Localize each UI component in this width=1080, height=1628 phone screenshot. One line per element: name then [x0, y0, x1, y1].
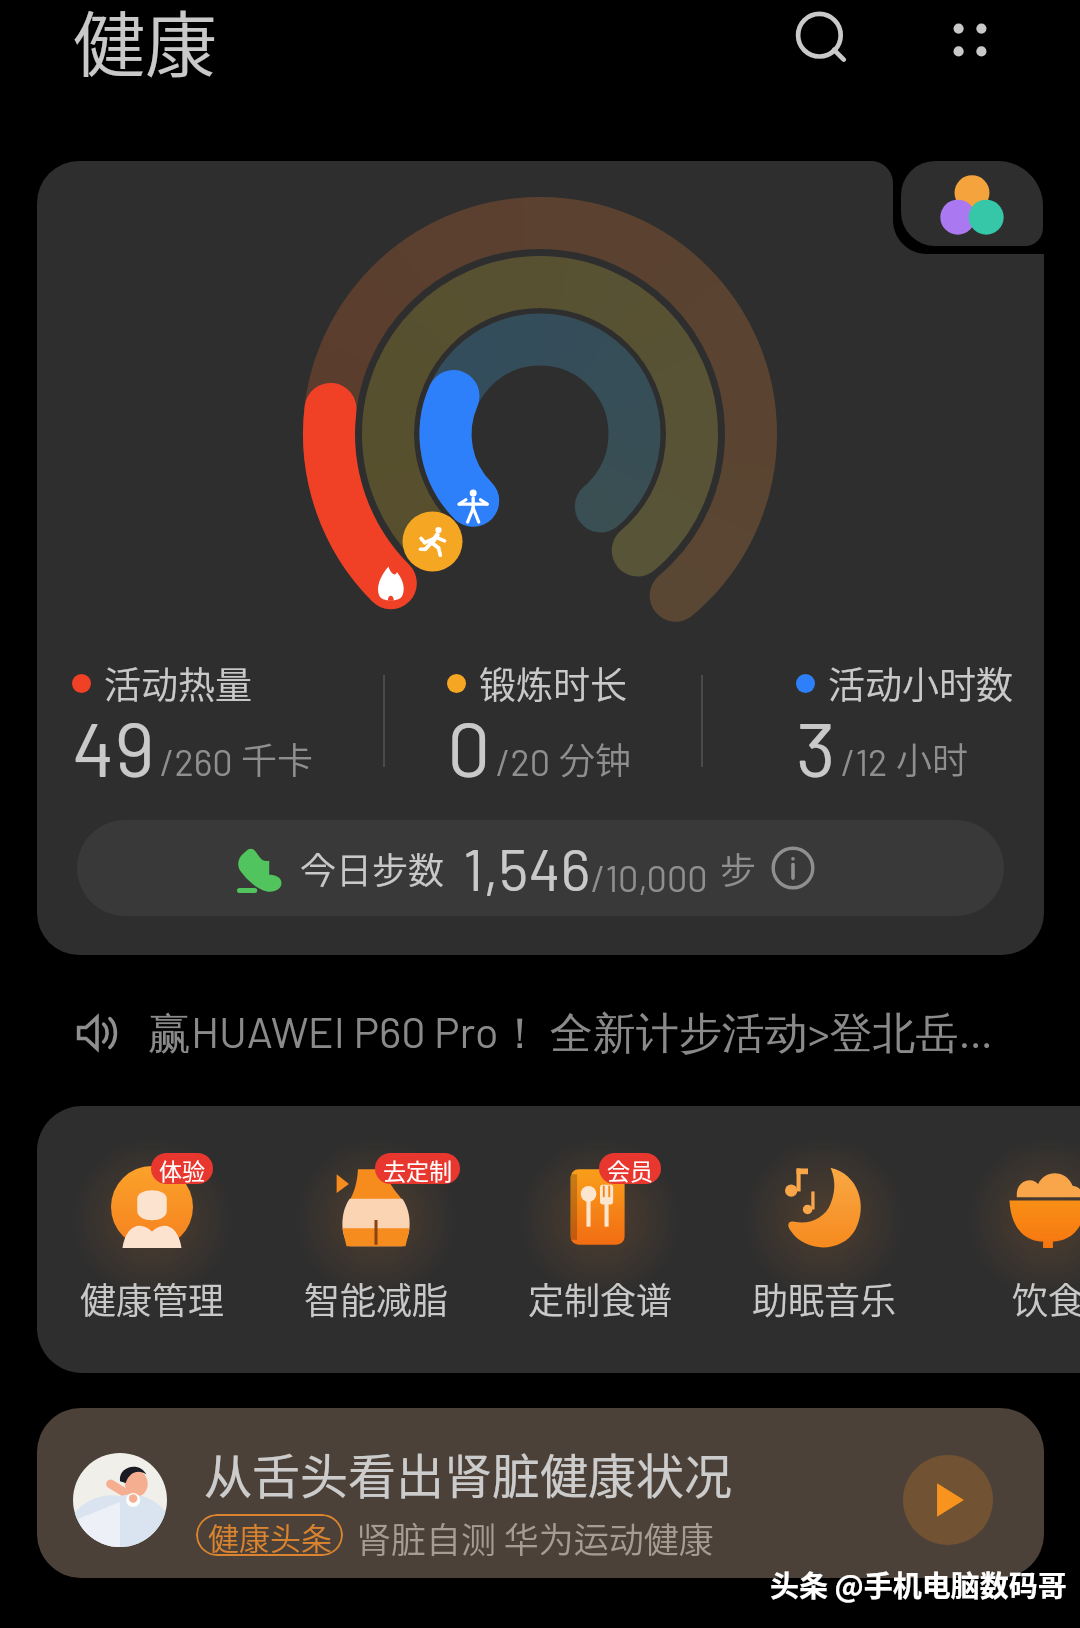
button[interactable]: 饮食 — [936, 1106, 1080, 1373]
button[interactable]: 体验 — [40, 1106, 264, 1373]
staticText: /10,000 — [591, 856, 708, 899]
staticText: 从舌头看出肾脏健康状况 — [204, 1438, 733, 1508]
button[interactable]: 活动小时数 — [796, 656, 1044, 802]
staticText: 肾脏自测 华为运动健康 — [356, 1512, 714, 1563]
button[interactable]: 健康头条 — [196, 1514, 343, 1556]
staticText: 智能减脂 — [304, 1272, 449, 1324]
staticText: 1,546 — [463, 833, 591, 903]
staticText: /12 — [841, 740, 888, 783]
button[interactable]: 从舌头看出肾脏健康状况 — [37, 1408, 1044, 1578]
staticText: 健康头条 — [208, 1514, 332, 1556]
staticText: 活动热量 — [104, 656, 252, 710]
button[interactable]: Play — [903, 1455, 993, 1545]
staticText: /260 — [160, 740, 233, 783]
staticText: 49 — [72, 700, 155, 792]
button[interactable]: More options — [928, 0, 1012, 82]
staticText: 健康管理 — [80, 1272, 225, 1324]
button[interactable]: 助眠音乐 — [712, 1106, 936, 1373]
staticText: 今日步数 — [300, 842, 445, 894]
staticText: /20 — [496, 740, 551, 783]
staticText: 小时 — [896, 732, 969, 784]
staticText: 饮食 — [1012, 1272, 1080, 1324]
staticText: 锻炼时长 — [479, 656, 627, 710]
staticText: 会员 — [607, 1153, 653, 1184]
button[interactable]: 健康 — [73, 0, 218, 91]
staticText: 3 — [796, 700, 836, 792]
button[interactable]: Activity rings detail — [901, 161, 1043, 246]
button[interactable]: 活动热量 — [37, 161, 1044, 955]
staticText: 助眠音乐 — [752, 1272, 897, 1324]
staticText: 赢HUAWEI P60 Pro！ 全新计步活动>登北岳… — [148, 1005, 993, 1061]
staticText: 定制食谱 — [528, 1272, 673, 1324]
button[interactable]: 今日步数 — [77, 820, 1004, 916]
button[interactable]: 去定制 — [264, 1106, 488, 1373]
staticText: 去定制 — [383, 1153, 452, 1184]
staticText: 体验 — [159, 1153, 205, 1184]
staticText: 千卡 — [241, 732, 314, 784]
button[interactable]: Search — [781, 0, 865, 82]
staticText: 步 — [720, 842, 757, 894]
staticText: 头条 @手机电脑数码哥 — [770, 1563, 1067, 1605]
staticText: 0 — [447, 700, 491, 792]
staticText: 活动小时数 — [828, 656, 1013, 710]
button[interactable]: 会员 — [488, 1106, 712, 1373]
button[interactable]: 赢HUAWEI P60 Pro！ 全新计步活动>登北岳… — [0, 985, 1080, 1081]
button[interactable]: 锻炼时长 — [447, 656, 722, 802]
staticText: 分钟 — [559, 732, 632, 784]
button[interactable]: 活动热量 — [72, 656, 347, 802]
